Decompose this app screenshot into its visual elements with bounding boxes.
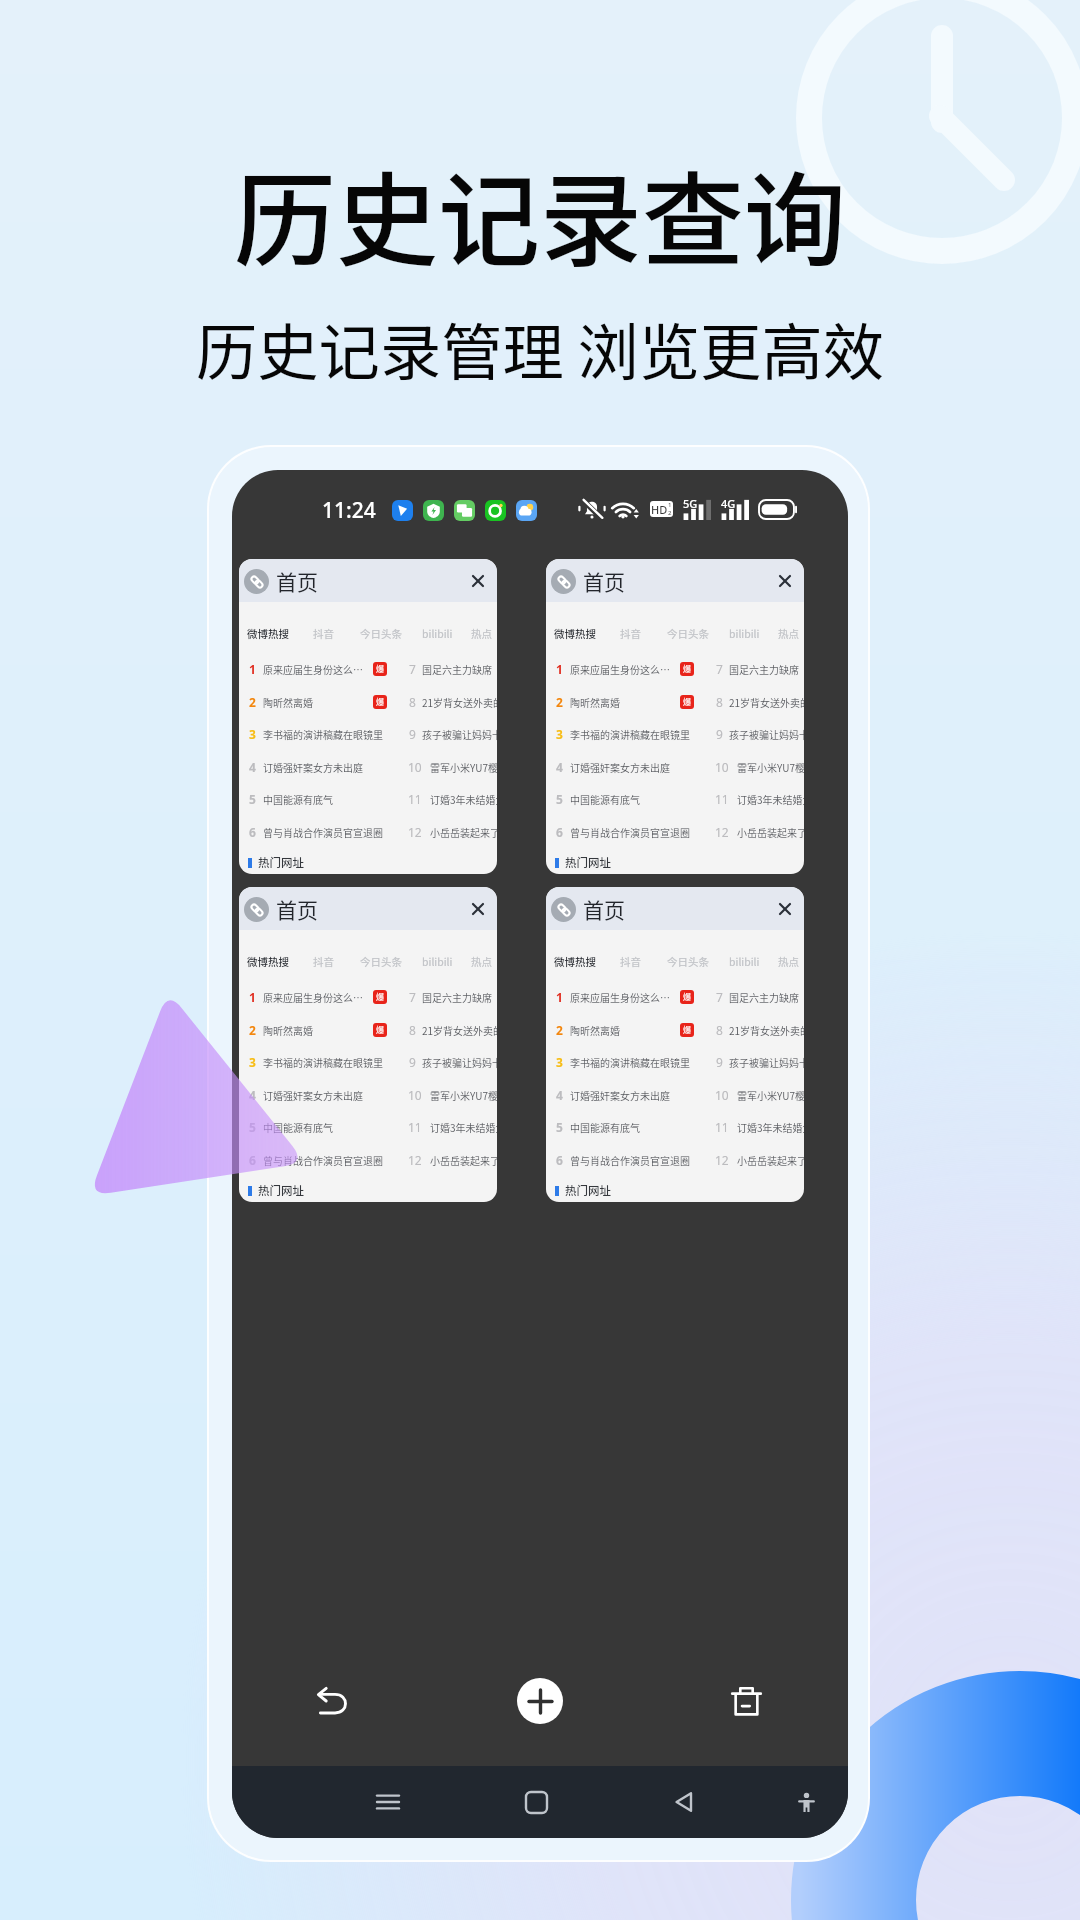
button[interactable]: bilibili xyxy=(729,954,760,969)
button[interactable]: 5 xyxy=(546,785,804,813)
staticText: 孩子被骗让妈妈卡 xyxy=(729,1055,804,1069)
button[interactable]: 4 xyxy=(239,753,497,781)
button[interactable]: 1 xyxy=(546,655,804,683)
button[interactable]: 今日头条 xyxy=(360,954,402,969)
button[interactable]: 1 xyxy=(546,983,804,1011)
staticText: 首页 xyxy=(583,566,625,596)
button[interactable]: 1 xyxy=(239,655,497,683)
staticText: 中国能源有底气 xyxy=(570,792,640,806)
staticText: 抖音 xyxy=(313,954,334,969)
button[interactable]: 2 xyxy=(239,1016,497,1044)
staticText: 陶昕然离婚 xyxy=(570,695,620,709)
staticText: 中国能源有底气 xyxy=(570,1120,640,1134)
button[interactable]: 菜单 xyxy=(314,1766,462,1838)
button[interactable]: 无障碍 xyxy=(784,1780,828,1824)
button[interactable]: 6 xyxy=(546,1146,804,1174)
button[interactable]: 抖音 xyxy=(313,954,334,969)
staticText: 3 xyxy=(249,726,256,742)
button[interactable]: 2 xyxy=(239,688,497,716)
staticText: 陶昕然离婚 xyxy=(263,695,313,709)
staticText: 首页 xyxy=(276,566,318,596)
button[interactable]: 关闭 xyxy=(466,569,490,593)
staticText: 5 xyxy=(249,1119,256,1135)
staticText: 爆 xyxy=(376,696,384,708)
staticText: 热门网址 xyxy=(565,854,611,871)
button[interactable]: 5 xyxy=(239,785,497,813)
button[interactable]: 6 xyxy=(546,818,804,846)
button[interactable]: 热点 xyxy=(471,626,492,641)
staticText: 今日头条 xyxy=(360,626,402,641)
button[interactable]: 首页 xyxy=(239,559,497,874)
button[interactable]: bilibili xyxy=(729,626,760,641)
staticText: bilibili xyxy=(422,626,453,641)
staticText: 订婚强奸案女方未出庭 xyxy=(263,760,363,774)
staticText: 爆 xyxy=(683,1024,691,1036)
button[interactable]: bilibili xyxy=(422,954,453,969)
staticText: 国足六主力缺席 xyxy=(729,990,799,1004)
staticText: 曾与肖战合作演员官宣退圈 xyxy=(263,1153,383,1167)
button[interactable]: 4 xyxy=(546,753,804,781)
staticText: 微博热搜 xyxy=(247,954,289,969)
button[interactable]: 关闭 xyxy=(773,897,797,921)
button[interactable]: 今日头条 xyxy=(667,626,709,641)
staticText: 原来应届生身份这么… xyxy=(570,990,670,1004)
button[interactable]: 微博热搜 xyxy=(554,626,596,641)
button[interactable]: 新建 xyxy=(517,1678,563,1724)
button[interactable]: 5 xyxy=(546,1113,804,1141)
staticText: 爆 xyxy=(376,1024,384,1036)
staticText: 21岁背女送外卖的 xyxy=(422,695,497,709)
button[interactable]: 6 xyxy=(239,818,497,846)
staticText: 微博热搜 xyxy=(554,954,596,969)
button[interactable]: 6 xyxy=(239,1146,497,1174)
button[interactable]: 5 xyxy=(239,1113,497,1141)
staticText: bilibili xyxy=(729,954,760,969)
button[interactable]: 3 xyxy=(239,720,497,748)
button[interactable]: 撤销 xyxy=(309,1677,357,1725)
button[interactable]: 2 xyxy=(546,688,804,716)
staticText: 4 xyxy=(249,1087,256,1103)
button[interactable]: 抖音 xyxy=(620,626,641,641)
button[interactable]: 热点 xyxy=(471,954,492,969)
staticText: 11 xyxy=(408,791,422,807)
button[interactable]: 抖音 xyxy=(313,626,334,641)
staticText: 3 xyxy=(249,1054,256,1070)
button[interactable]: 删除 xyxy=(722,1677,770,1725)
button[interactable]: 3 xyxy=(546,720,804,748)
button[interactable]: 2 xyxy=(546,1016,804,1044)
staticText: 今日头条 xyxy=(360,954,402,969)
staticText: 7 xyxy=(716,661,723,677)
button[interactable]: 微博热搜 xyxy=(247,626,289,641)
staticText: 微博热搜 xyxy=(247,626,289,641)
button[interactable]: 1 xyxy=(239,983,497,1011)
button[interactable]: 抖音 xyxy=(620,954,641,969)
button[interactable]: 热点 xyxy=(778,626,799,641)
button[interactable]: 首页 xyxy=(546,887,804,1202)
staticText: 首页 xyxy=(276,894,318,924)
button[interactable]: 3 xyxy=(546,1048,804,1076)
button[interactable]: 微博热搜 xyxy=(554,954,596,969)
button[interactable]: 主页 xyxy=(462,1766,610,1838)
button[interactable]: bilibili xyxy=(422,626,453,641)
staticText: 小岳岳装起来了一 xyxy=(430,825,497,839)
button[interactable]: 今日头条 xyxy=(360,626,402,641)
button[interactable]: 首页 xyxy=(239,887,497,1202)
button[interactable]: 返回 xyxy=(610,1766,758,1838)
button[interactable]: 关闭 xyxy=(466,897,490,921)
staticText: 1 xyxy=(249,661,256,677)
staticText: 历史记录查询 xyxy=(234,140,846,288)
staticText: 订婚强奸案女方未出庭 xyxy=(570,760,670,774)
button[interactable]: 4 xyxy=(239,1081,497,1109)
button[interactable]: 热点 xyxy=(778,954,799,969)
button[interactable]: 微博热搜 xyxy=(247,954,289,969)
staticText: 抖音 xyxy=(620,954,641,969)
staticText: 雷军小米YU7樱花 xyxy=(737,760,804,774)
staticText: 热点 xyxy=(471,626,492,641)
button[interactable]: 今日头条 xyxy=(667,954,709,969)
button[interactable]: 3 xyxy=(239,1048,497,1076)
staticText: 国足六主力缺席 xyxy=(422,990,492,1004)
staticText: HD xyxy=(651,502,668,517)
staticText: 1 xyxy=(556,661,563,677)
button[interactable]: 首页 xyxy=(546,559,804,874)
button[interactable]: 关闭 xyxy=(773,569,797,593)
button[interactable]: 4 xyxy=(546,1081,804,1109)
